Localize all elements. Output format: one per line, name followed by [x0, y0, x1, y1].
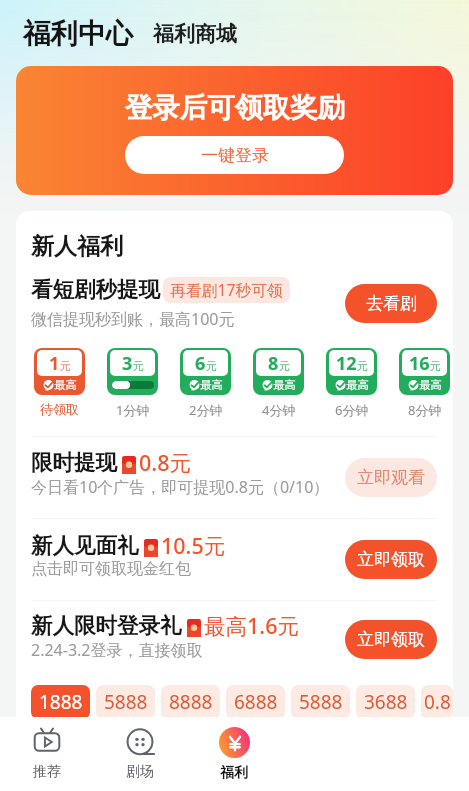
staticText: 最高	[419, 378, 442, 392]
staticText: 1分钟	[116, 401, 150, 419]
button[interactable]: 福利	[187, 717, 281, 791]
staticText: 点击即可领取现金红包	[31, 559, 191, 579]
staticText: 3688	[364, 689, 408, 715]
staticText: 最高	[54, 378, 77, 392]
staticText: 新人见面礼	[31, 532, 139, 559]
button[interactable]: 一键登录	[125, 136, 344, 174]
button[interactable]: 立即领取	[345, 540, 437, 579]
staticText: 0.8元	[139, 448, 191, 477]
button[interactable]: 6888	[226, 685, 285, 719]
staticText: 12	[336, 351, 357, 376]
staticText: 元	[60, 359, 71, 373]
button[interactable]: 16	[399, 348, 450, 395]
staticText: 待领取	[40, 401, 79, 417]
staticText: 最高	[273, 378, 296, 392]
staticText: 最高	[346, 378, 369, 392]
staticText: 元	[206, 359, 217, 373]
staticText: 6	[195, 351, 206, 376]
staticText: 2.24-3.2登录，直接领取	[31, 639, 203, 661]
staticText: 立即观看	[357, 467, 425, 488]
button[interactable]: 看短剧秒提现	[31, 273, 437, 333]
staticText: 登录后可领取奖励	[125, 91, 345, 126]
staticText: 立即领取	[357, 629, 425, 650]
button[interactable]: 5888	[291, 685, 350, 719]
button[interactable]: 0.8	[421, 685, 453, 719]
other: 推荐	[32, 727, 62, 757]
staticText: 限时提现	[31, 449, 117, 476]
button[interactable]: 3688	[356, 685, 415, 719]
button[interactable]: 8888	[161, 685, 220, 719]
staticText: 6分钟	[335, 401, 369, 419]
other: 剧场	[125, 727, 155, 757]
button[interactable]: 剧场	[93, 717, 187, 791]
staticText: 剧场	[126, 763, 154, 781]
staticText: 6888	[234, 689, 278, 715]
staticText: 8888	[169, 689, 213, 715]
staticText: 3	[122, 351, 133, 376]
button[interactable]: 立即领取	[345, 620, 437, 659]
staticText: 元	[133, 359, 144, 373]
staticText: 立即领取	[357, 549, 425, 570]
staticText: 8	[268, 351, 279, 376]
button[interactable]: 立即观看	[345, 458, 437, 497]
button[interactable]: 5888	[96, 685, 155, 719]
other: 福利	[219, 727, 250, 758]
staticText: 今日看10个广告，即可提现0.8元（0/10）	[31, 476, 330, 498]
staticText: 5888	[104, 689, 148, 715]
staticText: 元	[279, 359, 290, 373]
button[interactable]: 6	[180, 348, 231, 395]
staticText: 福利商城	[153, 21, 237, 47]
staticText: 4分钟	[262, 401, 296, 419]
button[interactable]: 新人见面礼	[31, 519, 437, 600]
staticText: 最高	[200, 378, 223, 392]
staticText: 推荐	[33, 763, 61, 781]
staticText: 8分钟	[408, 401, 442, 419]
button[interactable]: 推荐	[0, 717, 93, 791]
button[interactable]: 12	[326, 348, 377, 395]
button[interactable]: 1888	[31, 685, 90, 719]
staticText: 1	[49, 351, 60, 376]
staticText: 看短剧秒提现	[31, 276, 160, 303]
staticText: 16	[409, 351, 430, 376]
staticText: 去看剧	[366, 293, 417, 314]
staticText: 新人福利	[31, 232, 123, 261]
button[interactable]: 登录后可领取奖励	[16, 66, 453, 195]
staticText: 福利	[220, 764, 248, 782]
staticText: 元	[430, 359, 441, 373]
staticText: 10.5元	[161, 531, 226, 560]
button[interactable]: 1	[34, 348, 85, 395]
staticText: 元	[357, 359, 368, 373]
button[interactable]: 去看剧	[345, 284, 437, 323]
staticText: 0.8	[424, 689, 451, 715]
staticText: 最高1.6元	[204, 611, 299, 640]
staticText: 福利中心	[23, 17, 133, 52]
staticText: 2分钟	[189, 401, 223, 419]
staticText: 微信提现秒到账，最高100元	[31, 308, 235, 330]
button[interactable]: 3	[107, 348, 158, 395]
button[interactable]: 新人限时登录礼	[31, 601, 437, 678]
staticText: 一键登录	[201, 145, 269, 166]
staticText: 5888	[299, 689, 343, 715]
staticText: 再看剧17秒可领	[170, 279, 283, 301]
button[interactable]: 限时提现	[31, 437, 437, 518]
staticText: 1888	[39, 689, 83, 715]
button[interactable]: 8	[253, 348, 304, 395]
staticText: 新人限时登录礼	[31, 612, 182, 639]
